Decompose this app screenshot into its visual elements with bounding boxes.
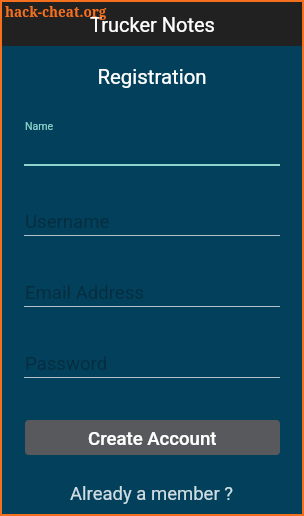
other: watermark frame <box>0 0 304 516</box>
staticText: hack-cheat.org <box>5 3 107 21</box>
button[interactable]: Trucker Notes <box>0 0 304 46</box>
staticText: Already a member ? <box>70 483 234 505</box>
staticText: Email Address <box>25 282 144 304</box>
button[interactable]: Already a member ? <box>0 483 304 505</box>
staticText: Password <box>25 353 108 375</box>
staticText: Create Account <box>88 428 217 450</box>
staticText: Username <box>25 211 110 233</box>
button[interactable]: Create Account <box>25 420 280 455</box>
staticText: Name <box>25 120 54 132</box>
staticText: Registration <box>0 65 304 89</box>
staticText: Trucker Notes <box>90 13 215 36</box>
